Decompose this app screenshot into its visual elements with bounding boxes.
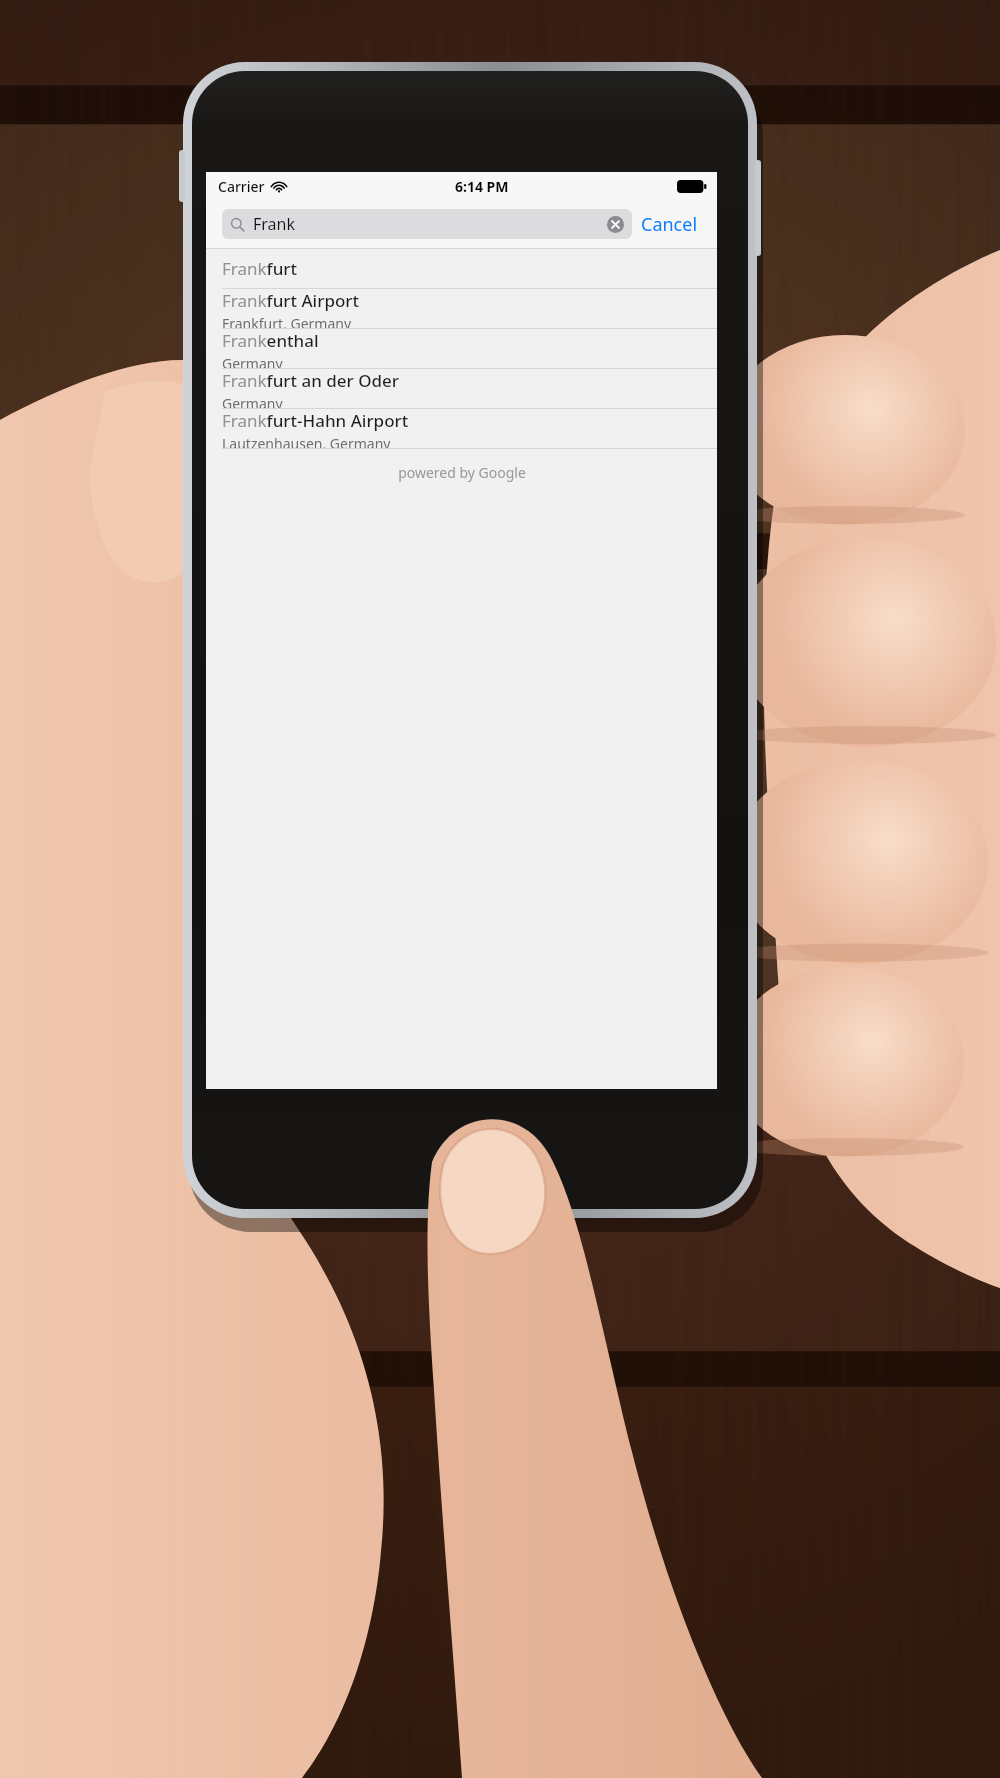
staticText: Frankfurt, Germany	[222, 314, 352, 328]
button[interactable]: Clear text	[607, 216, 624, 233]
button[interactable]: Frankfurt Airport	[206, 289, 717, 328]
staticText: Germany	[222, 354, 283, 368]
button[interactable]: Frankenthal	[206, 329, 717, 368]
button[interactable]: Frankfurt-Hahn Airport	[206, 409, 717, 448]
button[interactable]: Frankfurt	[206, 249, 717, 288]
staticText: 6:14 PM	[455, 177, 509, 196]
staticText: Carrier	[218, 177, 265, 196]
staticText: Frankfurt an der Oder	[222, 369, 400, 392]
button[interactable]: Frank	[222, 209, 632, 239]
staticText: Lautzenhausen, Germany	[222, 434, 391, 448]
staticText: Germany	[222, 394, 283, 408]
staticText: Frankfurt-Hahn Airport	[222, 409, 409, 432]
button[interactable]: Cancel	[632, 205, 707, 244]
staticText: powered by Google	[398, 463, 526, 482]
staticText: Cancel	[641, 212, 698, 237]
staticText: Frank	[253, 213, 296, 235]
staticText: Frankfurt Airport	[222, 289, 360, 312]
staticText: Frankenthal	[222, 329, 319, 352]
staticText: Frankfurt	[222, 257, 298, 280]
button[interactable]: Frankfurt an der Oder	[206, 369, 717, 408]
